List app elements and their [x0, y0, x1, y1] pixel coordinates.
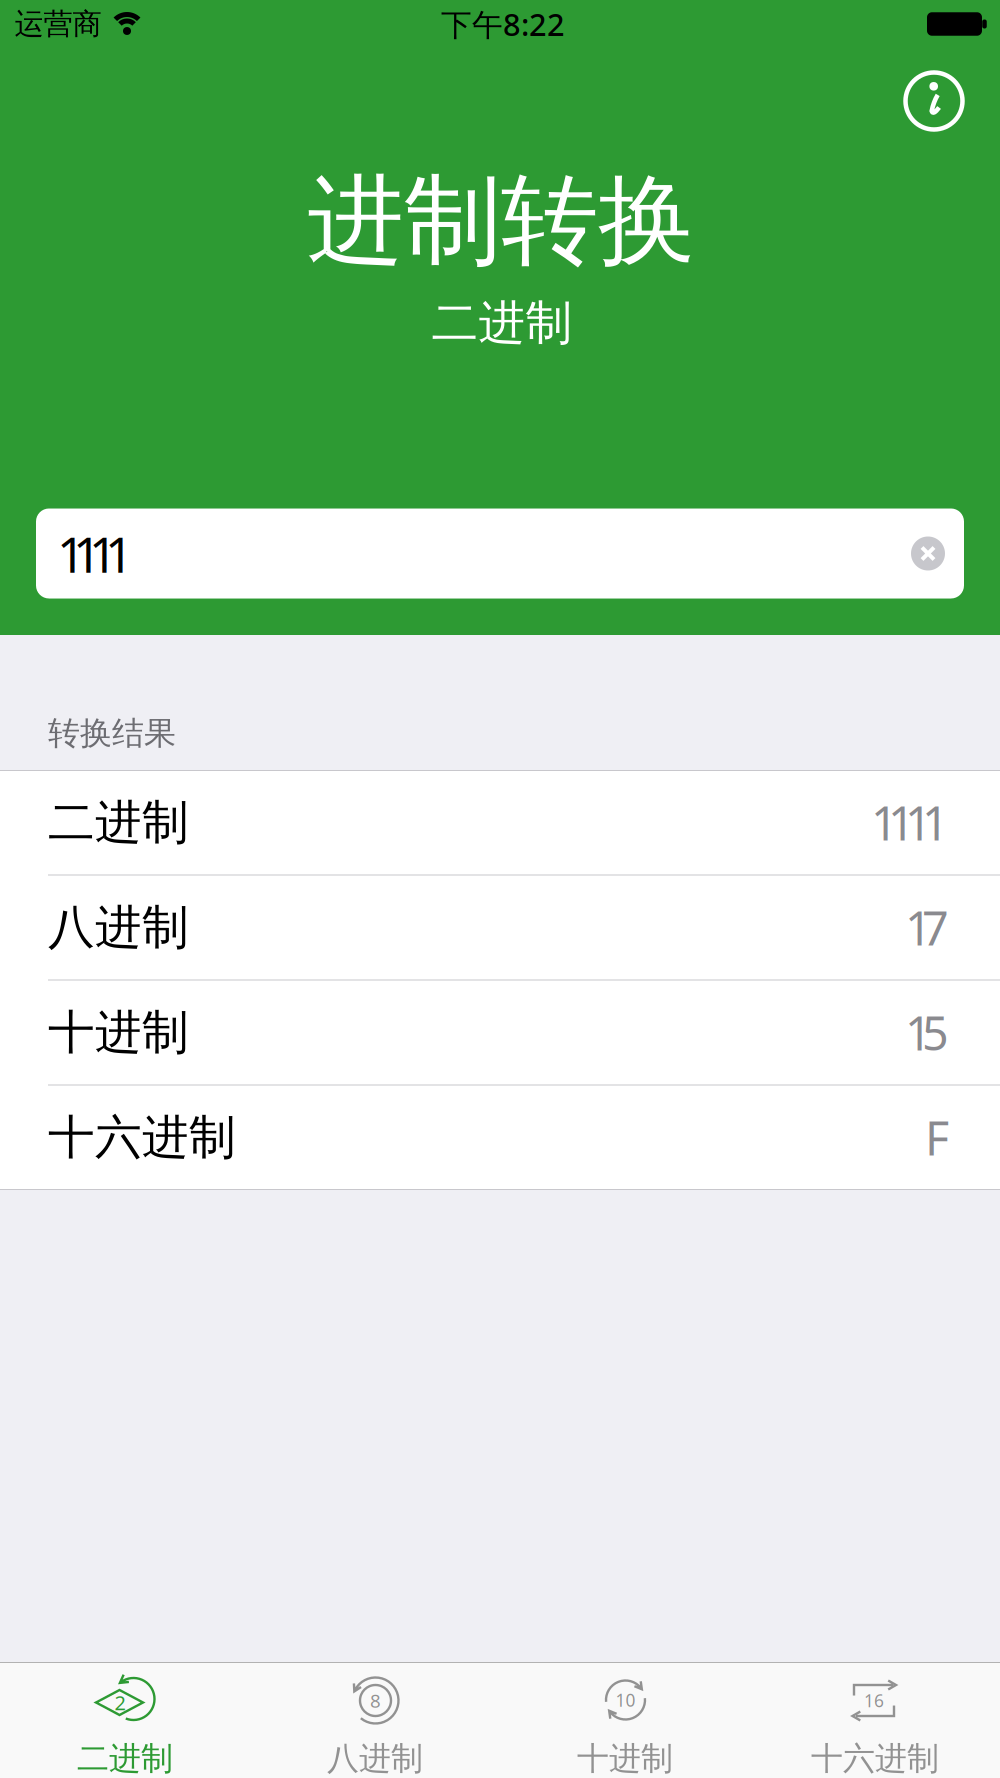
staticText: 运营商 — [14, 6, 101, 42]
button[interactable]: 清除文本 — [911, 536, 945, 570]
staticText: 二进制 — [48, 793, 189, 852]
button[interactable]: 2 — [0, 1663, 250, 1778]
staticText: 15 — [905, 1001, 949, 1063]
staticText: 进制转换 — [307, 160, 695, 282]
staticText: 10 — [615, 1688, 635, 1711]
staticText: 1111 — [871, 791, 949, 853]
staticText: 1111 — [57, 521, 133, 586]
button[interactable]: 16 — [750, 1663, 1000, 1778]
staticText: 十进制 — [577, 1739, 673, 1778]
staticText: 十六进制 — [48, 1108, 236, 1167]
button[interactable]: 关于 — [905, 72, 962, 129]
staticText: 8 — [370, 1688, 381, 1713]
staticText: 二进制 — [77, 1739, 173, 1778]
staticText: 十六进制 — [811, 1739, 939, 1778]
button[interactable]: 10 — [500, 1663, 750, 1778]
staticText: 八进制 — [327, 1739, 423, 1778]
staticText: 下午8:22 — [441, 4, 565, 44]
staticText: 17 — [905, 896, 949, 958]
staticText: F — [925, 1106, 949, 1168]
staticText: 十进制 — [48, 1003, 189, 1062]
staticText: 二进制 — [431, 294, 572, 352]
staticText: 2 — [114, 1689, 125, 1716]
staticText: 八进制 — [48, 898, 189, 957]
staticText: 16 — [864, 1689, 884, 1712]
button[interactable]: 8 — [250, 1663, 500, 1778]
staticText: 转换结果 — [48, 714, 176, 753]
